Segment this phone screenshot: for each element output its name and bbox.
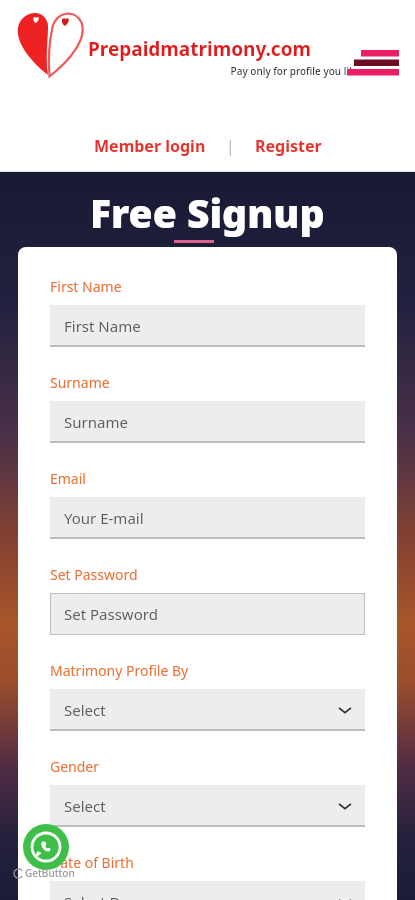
button[interactable]: Register — [249, 131, 328, 161]
staticText: Gender — [50, 757, 100, 776]
staticText: Pay only for profile you like — [88, 64, 415, 78]
staticText: Date of Birth — [50, 853, 134, 872]
staticText: Select Day — [64, 892, 137, 900]
staticText: Matrimony Profile By — [50, 661, 189, 680]
staticText: Surname — [64, 412, 128, 432]
button[interactable]: Chat on WhatsApp — [23, 824, 69, 870]
button[interactable]: Select Day — [50, 881, 365, 900]
staticText: First Name — [50, 277, 122, 296]
staticText: Email — [50, 469, 86, 488]
staticText: Free Signup — [90, 186, 325, 239]
staticText: Surname — [50, 373, 110, 392]
staticText: Prepaidmatrimony.com — [88, 36, 312, 62]
staticText: Set Password — [50, 565, 138, 584]
staticText: Register — [255, 135, 322, 157]
button[interactable]: Open menu — [347, 38, 407, 82]
button[interactable]: First Name — [50, 305, 365, 347]
button[interactable]: Set Password — [50, 593, 365, 635]
staticText: First Name — [64, 316, 141, 336]
staticText: Member login — [94, 135, 206, 157]
staticText: Select — [64, 796, 106, 816]
button[interactable]: Surname — [50, 401, 365, 443]
staticText: Select — [64, 700, 106, 720]
staticText: GetButton — [25, 866, 75, 880]
button[interactable]: Member login — [88, 131, 212, 161]
button[interactable]: Select — [50, 785, 365, 827]
staticText: | — [226, 135, 235, 157]
staticText: Your E-mail — [64, 508, 144, 528]
button[interactable]: Select — [50, 689, 365, 731]
staticText: Set Password — [64, 604, 158, 624]
button[interactable]: Your E-mail — [50, 497, 365, 539]
